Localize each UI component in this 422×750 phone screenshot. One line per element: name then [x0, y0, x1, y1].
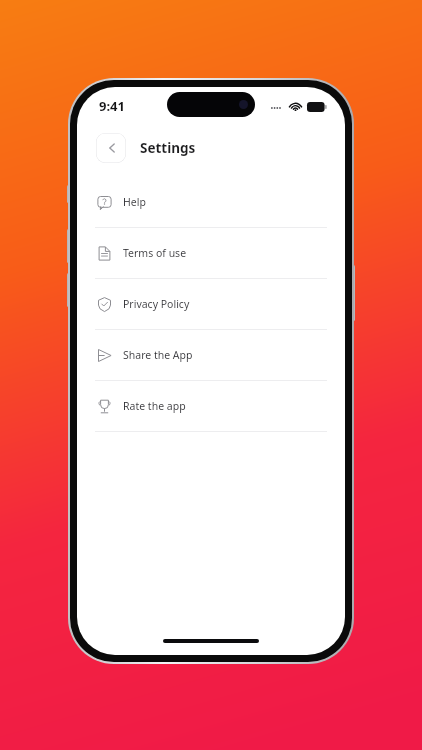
staticText: Settings — [140, 139, 196, 157]
button[interactable]: Share the App — [77, 330, 345, 380]
button[interactable]: Rate the app — [77, 381, 345, 431]
staticText: Terms of use — [123, 246, 187, 260]
button[interactable]: Help — [77, 177, 345, 227]
staticText: 9:41 — [99, 97, 125, 115]
staticText: Rate the app — [123, 399, 186, 413]
button[interactable]: Back — [96, 133, 126, 163]
staticText: Share the App — [123, 348, 193, 362]
button[interactable]: Terms of use — [77, 228, 345, 278]
staticText: Help — [123, 195, 146, 209]
button[interactable]: Privacy Policy — [77, 279, 345, 329]
staticText: Privacy Policy — [123, 297, 190, 311]
